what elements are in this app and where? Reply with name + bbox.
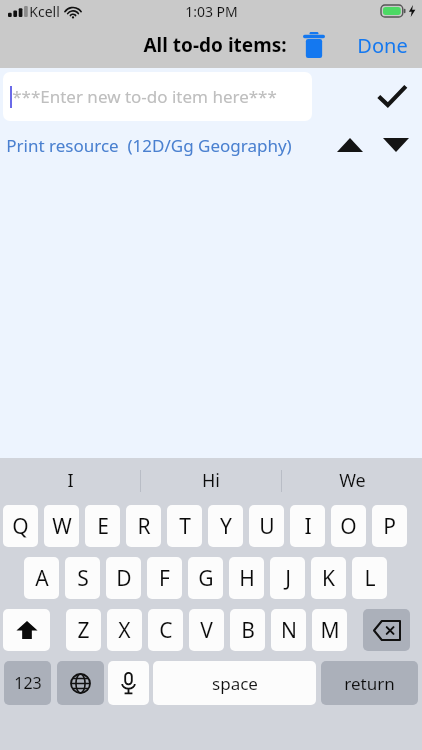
button[interactable]: T (167, 505, 202, 547)
button[interactable]: Change keyboard language (57, 661, 104, 705)
staticText: ***Enter new to-do item here*** (12, 85, 277, 108)
staticText: R (137, 512, 151, 541)
button[interactable]: U (249, 505, 284, 547)
button[interactable]: H (229, 557, 264, 599)
button[interactable]: W (44, 505, 79, 547)
staticText: Print resource (12D/Gg Geography) (6, 134, 292, 157)
button[interactable]: G (188, 557, 223, 599)
button[interactable]: E (85, 505, 120, 547)
button[interactable]: We (282, 458, 422, 503)
button[interactable]: S (65, 557, 100, 599)
button[interactable]: L (352, 557, 387, 599)
staticText: U (259, 512, 275, 541)
button[interactable]: V (189, 609, 224, 651)
staticText: O (340, 512, 357, 541)
button[interactable]: C (148, 609, 183, 651)
staticText: space (212, 672, 258, 695)
staticText: W (52, 512, 72, 541)
button[interactable]: K (311, 557, 346, 599)
staticText: I (67, 468, 74, 493)
staticText: 123 (14, 672, 42, 694)
staticText: H (239, 564, 255, 593)
staticText: Z (77, 616, 90, 645)
staticText: Kcell (29, 2, 60, 21)
button[interactable]: A (24, 557, 59, 599)
staticText: G (198, 564, 214, 593)
staticText: I (304, 512, 312, 541)
button[interactable]: X (107, 609, 142, 651)
button[interactable]: N (271, 609, 306, 651)
button[interactable]: M (312, 609, 347, 651)
staticText: All to-do items: (143, 32, 287, 58)
button[interactable]: R (126, 505, 161, 547)
button[interactable]: J (270, 557, 305, 599)
staticText: S (77, 564, 89, 593)
button[interactable]: 123 (4, 661, 51, 705)
staticText: J (285, 564, 291, 593)
button[interactable]: B (230, 609, 265, 651)
button[interactable]: F (147, 557, 182, 599)
button[interactable]: Add item (368, 72, 416, 120)
staticText: C (159, 616, 173, 645)
button[interactable]: Y (208, 505, 243, 547)
button[interactable]: Dictation (108, 661, 149, 705)
button[interactable]: space (153, 661, 316, 705)
staticText: return (344, 672, 395, 695)
button[interactable]: Backspace (363, 609, 410, 651)
staticText: E (97, 512, 109, 541)
staticText: K (322, 564, 335, 593)
staticText: X (118, 616, 131, 645)
staticText: V (200, 616, 213, 645)
button[interactable]: Q (3, 505, 38, 547)
button[interactable]: Done (357, 32, 408, 59)
button[interactable]: I (290, 505, 325, 547)
button[interactable]: I (0, 458, 140, 503)
staticText: B (241, 616, 255, 645)
staticText: T (179, 512, 191, 541)
staticText: Hi (202, 468, 220, 493)
staticText: P (383, 512, 396, 541)
staticText: Done (357, 32, 408, 59)
staticText: Q (12, 512, 29, 541)
button[interactable]: Move up (332, 127, 368, 163)
button[interactable]: O (331, 505, 366, 547)
staticText: We (339, 468, 366, 493)
staticText: L (364, 564, 376, 593)
staticText: A (35, 564, 49, 593)
button[interactable]: Print resource (12D/Gg Geography) (0, 124, 422, 166)
staticText: D (116, 564, 132, 593)
button[interactable]: Delete all (298, 28, 330, 62)
staticText: M (320, 616, 340, 645)
button[interactable]: Shift (3, 609, 50, 651)
staticText: Y (220, 512, 232, 541)
button[interactable]: Move down (378, 127, 414, 163)
staticText: N (281, 616, 297, 645)
button[interactable]: ***Enter new to-do item here*** (3, 72, 312, 121)
button[interactable]: Hi (141, 458, 281, 503)
staticText: F (159, 564, 170, 593)
staticText: 1:03 PM (185, 2, 238, 21)
button[interactable]: P (372, 505, 407, 547)
button[interactable]: Z (66, 609, 101, 651)
button[interactable]: return (321, 661, 418, 705)
button[interactable]: D (106, 557, 141, 599)
